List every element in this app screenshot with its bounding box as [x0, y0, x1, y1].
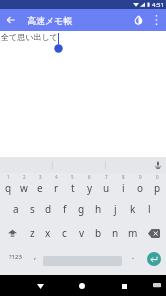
staticText: 全て思い出して — [1, 32, 58, 42]
staticText: d — [45, 202, 52, 216]
staticText: 4 — [55, 174, 58, 180]
button[interactable]: Enter — [147, 252, 161, 266]
staticText: g — [78, 202, 85, 216]
button[interactable]: Home — [72, 276, 92, 296]
button[interactable]: v — [73, 221, 90, 245]
button[interactable]: d — [40, 197, 56, 221]
button[interactable]: , — [28, 249, 42, 265]
staticText: s — [30, 202, 35, 216]
button[interactable]: 2 — [16, 173, 32, 197]
button[interactable]: b — [90, 221, 107, 245]
staticText: x — [45, 226, 51, 240]
staticText: u — [103, 181, 110, 195]
button[interactable]: 0 — [149, 173, 166, 197]
button[interactable]: s — [24, 197, 40, 221]
button[interactable]: Shift — [0, 221, 24, 245]
staticText: m — [128, 226, 138, 240]
button[interactable]: 5 — [64, 173, 81, 197]
button[interactable]: Hide keyboard — [148, 277, 166, 295]
staticText: 0 — [156, 174, 159, 180]
staticText: w — [20, 181, 28, 195]
button[interactable]: n — [107, 221, 124, 245]
button[interactable]: 8 — [115, 173, 132, 197]
staticText: 7 — [105, 174, 108, 180]
staticText: 高速メモ帳 — [27, 15, 73, 26]
button[interactable]: More options — [148, 12, 164, 28]
staticText: 3 — [39, 174, 42, 180]
button[interactable]: j — [107, 197, 124, 221]
button[interactable]: ?123 — [2, 249, 28, 265]
staticText: . — [132, 250, 135, 261]
button[interactable]: l — [141, 197, 158, 221]
button[interactable]: Invert colours — [128, 10, 148, 30]
staticText: 4:51 — [152, 1, 164, 9]
staticText: b — [95, 226, 102, 240]
staticText: v — [79, 226, 85, 240]
staticText: r — [54, 181, 59, 195]
staticText: l — [148, 202, 151, 216]
staticText: j — [114, 202, 117, 216]
button[interactable]: Back — [0, 9, 22, 31]
staticText: e — [37, 181, 43, 195]
staticText: 1 — [7, 174, 10, 180]
staticText: 6 — [88, 174, 91, 180]
staticText: f — [63, 202, 67, 216]
staticText: 5 — [71, 174, 74, 180]
staticText: , — [34, 250, 37, 261]
staticText: t — [71, 181, 75, 195]
staticText: o — [137, 181, 144, 195]
button[interactable]: Recents — [114, 276, 134, 296]
staticText: a — [13, 202, 19, 216]
button[interactable]: 7 — [98, 173, 115, 197]
staticText: 8 — [122, 174, 125, 180]
button[interactable]: k — [124, 197, 141, 221]
staticText: c — [62, 226, 67, 240]
button[interactable]: 9 — [132, 173, 149, 197]
button[interactable]: 4 — [48, 173, 64, 197]
staticText: q — [5, 181, 12, 195]
staticText: k — [130, 202, 136, 216]
button[interactable]: x — [40, 221, 56, 245]
button[interactable]: f — [56, 197, 73, 221]
staticText: ?123 — [9, 253, 22, 261]
button[interactable]: z — [24, 221, 40, 245]
staticText: 2 — [23, 174, 26, 180]
button[interactable]: m — [124, 221, 141, 245]
staticText: z — [30, 226, 35, 240]
staticText: y — [87, 181, 93, 195]
button[interactable]: Back — [30, 276, 50, 296]
button[interactable]: c — [56, 221, 73, 245]
button[interactable]: g — [73, 197, 90, 221]
button[interactable]: a — [8, 197, 24, 221]
staticText: n — [112, 226, 119, 240]
button[interactable]: 1 — [0, 173, 16, 197]
button[interactable]: h — [90, 197, 107, 221]
staticText: i — [122, 181, 125, 195]
staticText: p — [154, 181, 161, 195]
staticText: h — [95, 202, 102, 216]
button[interactable]: 6 — [81, 173, 98, 197]
button[interactable]: 3 — [32, 173, 48, 197]
button[interactable]: . — [126, 249, 140, 265]
button[interactable]: Backspace — [141, 221, 166, 245]
staticText: 9 — [139, 174, 142, 180]
